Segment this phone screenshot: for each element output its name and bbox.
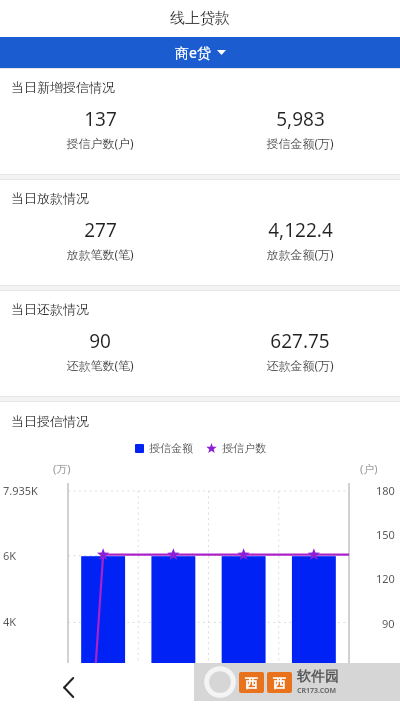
staticText: 当日新增授信情况 — [11, 79, 115, 95]
button[interactable]: 当日还款情况 — [0, 291, 400, 396]
staticText: 60 — [382, 660, 395, 675]
staticText: 137 — [84, 106, 117, 132]
button[interactable]: 商e贷 — [0, 37, 400, 68]
staticText: 放款笔数(笔) — [66, 246, 134, 262]
staticText: 90 — [89, 328, 111, 354]
staticText: 180 — [376, 483, 395, 498]
staticText: 90 — [382, 616, 395, 631]
staticText: 线上贷款 — [170, 9, 230, 28]
staticText: 还款金额(万) — [266, 357, 334, 373]
button[interactable]: 当日新增授信情况 — [0, 69, 400, 174]
staticText: 授信户数(户) — [66, 135, 134, 151]
button[interactable]: Back — [52, 670, 86, 704]
staticText: CR173.COM — [297, 686, 337, 696]
staticText: 放款金额(万) — [266, 246, 334, 262]
staticText: 当日放款情况 — [11, 190, 89, 206]
staticText: 商e贷 — [175, 43, 211, 62]
staticText: 授信户数 — [222, 441, 266, 455]
staticText: 7.935K — [3, 483, 38, 498]
staticText: 西 — [273, 675, 286, 691]
staticText: 当日授信情况 — [11, 413, 89, 429]
staticText: 150 — [376, 527, 395, 542]
staticText: 软件园 — [297, 668, 339, 686]
staticText: 627.75 — [270, 328, 330, 354]
staticText: 6K — [3, 548, 17, 563]
staticText: 授信金额(万) — [266, 135, 334, 151]
staticText: 120 — [376, 571, 395, 586]
staticText: (万) — [53, 461, 71, 476]
staticText: 4K — [3, 614, 17, 629]
staticText: 授信金额 — [149, 441, 193, 455]
staticText: 5,983 — [276, 106, 325, 132]
staticText: 西 — [245, 675, 258, 691]
staticText: 还款笔数(笔) — [66, 357, 134, 373]
staticText: (户) — [360, 461, 378, 476]
staticText: 当日还款情况 — [11, 301, 89, 317]
staticText: 277 — [84, 217, 117, 243]
staticText: 4,122.4 — [268, 217, 333, 243]
button[interactable]: 当日放款情况 — [0, 180, 400, 285]
